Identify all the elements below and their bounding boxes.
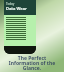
staticText: Data Wear bbox=[6, 6, 27, 11]
staticText: Today bbox=[6, 2, 15, 6]
staticText: The Perfect Information of the Glance. bbox=[0, 55, 64, 71]
